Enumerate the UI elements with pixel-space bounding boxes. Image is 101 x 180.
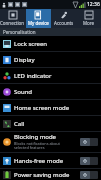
staticText: Power saving mode	[14, 171, 70, 179]
button[interactable]: Toggle Hands-free mode	[80, 157, 98, 165]
staticText: Sound	[14, 88, 33, 96]
staticText: 12:36	[87, 1, 100, 8]
button[interactable]: More	[76, 9, 101, 28]
staticText: Hands-free mode	[14, 157, 64, 165]
staticText: Personalisation	[3, 29, 36, 35]
button[interactable]: Connections	[0, 9, 26, 28]
button[interactable]: Power saving mode	[0, 169, 101, 180]
staticText: Blocks notifications about selected feat…	[14, 141, 60, 151]
staticText: More	[83, 20, 95, 26]
button[interactable]: Blocking mode	[0, 132, 101, 153]
staticText: LED indicator	[14, 72, 52, 80]
staticText: Lock screen	[14, 40, 48, 48]
button[interactable]: Hands-free mode	[0, 153, 101, 169]
button[interactable]: Call	[0, 116, 101, 132]
button[interactable]: Sound	[0, 84, 101, 100]
button[interactable]: Lock screen	[0, 36, 101, 52]
staticText: My device	[28, 20, 49, 26]
button[interactable]: Toggle Power saving mode	[80, 171, 98, 179]
staticText: Accounts	[54, 20, 74, 26]
staticText: Connections	[0, 20, 26, 26]
staticText: Display	[14, 56, 35, 64]
button[interactable]: Home screen mode	[0, 100, 101, 116]
button[interactable]: My device	[26, 9, 51, 28]
button[interactable]: Toggle Blocking mode	[80, 138, 98, 146]
staticText: Home screen mode	[14, 104, 70, 112]
button[interactable]: LED indicator	[0, 68, 101, 84]
button[interactable]: Display	[0, 52, 101, 68]
button[interactable]: Accounts	[51, 9, 76, 28]
staticText: Call	[14, 120, 25, 128]
staticText: Blocking mode	[14, 133, 56, 141]
